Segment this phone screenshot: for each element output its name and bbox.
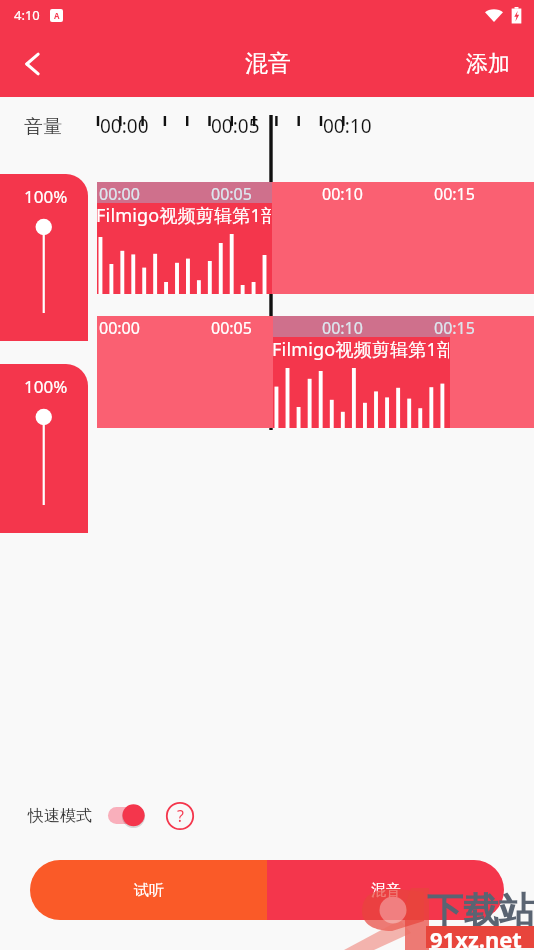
staticText: A bbox=[54, 10, 60, 21]
staticText: 100% bbox=[24, 185, 68, 208]
staticText: 91xz.net bbox=[430, 924, 522, 950]
button[interactable]: 添加 bbox=[446, 30, 534, 97]
staticText: 4:10 bbox=[14, 6, 40, 24]
staticText: 100% bbox=[24, 375, 68, 398]
staticText: 00:15 bbox=[434, 183, 475, 205]
staticText: 00:05 bbox=[211, 183, 252, 205]
staticText: 00:00 bbox=[99, 317, 140, 339]
staticText: 00:15 bbox=[434, 317, 475, 339]
staticText: 00:00 bbox=[99, 183, 140, 205]
staticText: 00:05 bbox=[211, 317, 252, 339]
button[interactable]: Volume bbox=[0, 364, 88, 533]
staticText: 试听 bbox=[134, 881, 164, 900]
staticText: 00:10 bbox=[322, 183, 363, 205]
staticText: Filmigo视频剪辑第1部 bbox=[273, 337, 449, 362]
staticText: 快速模式 bbox=[28, 806, 92, 826]
staticText: 下载站 bbox=[427, 888, 534, 933]
staticText: 添加 bbox=[466, 50, 510, 78]
staticText: ? bbox=[177, 805, 184, 827]
staticText: 00:10 bbox=[322, 317, 363, 339]
button[interactable]: Volume bbox=[0, 174, 88, 341]
button[interactable]: 混音 bbox=[267, 860, 504, 920]
staticText: 00:00 bbox=[100, 113, 149, 139]
staticText: 混音 bbox=[245, 49, 291, 78]
staticText: 00:10 bbox=[323, 113, 372, 139]
button[interactable]: Fast mode toggle bbox=[105, 802, 151, 829]
staticText: 混音 bbox=[371, 881, 401, 900]
staticText: Filmigo视频剪辑第1部 bbox=[97, 203, 271, 228]
button[interactable]: Help bbox=[166, 802, 194, 830]
staticText: 音量 bbox=[24, 115, 62, 139]
button[interactable]: 试听 bbox=[30, 860, 267, 920]
staticText: 00:05 bbox=[211, 113, 260, 139]
button[interactable]: Back bbox=[0, 30, 66, 97]
